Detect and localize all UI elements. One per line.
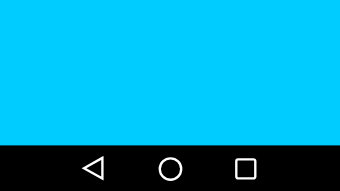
- button[interactable]: Recent apps: [223, 145, 269, 191]
- button[interactable]: Home: [147, 145, 193, 191]
- button[interactable]: Back: [71, 145, 117, 191]
